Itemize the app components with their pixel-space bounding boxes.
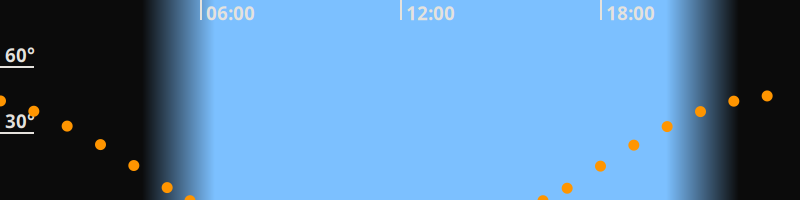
staticText: 06:00 xyxy=(206,1,255,25)
staticText: 12:00 xyxy=(406,1,455,25)
staticText: 18:00 xyxy=(606,1,655,25)
staticText: 30° xyxy=(5,109,35,133)
staticText: 60° xyxy=(5,43,35,67)
